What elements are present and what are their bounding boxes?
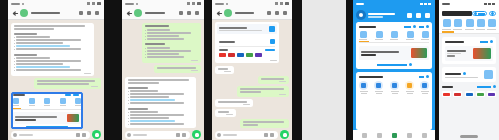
button[interactable] [142, 23, 201, 63]
button[interactable]: Send voice message [92, 130, 101, 139]
button[interactable]: Contact avatar [224, 9, 232, 17]
button[interactable] [442, 67, 496, 82]
button[interactable]: Voice call [85, 9, 93, 17]
button[interactable]: Product tab [356, 22, 432, 69]
button[interactable]: Favourite transaction [374, 81, 383, 94]
button[interactable]: Voice call [185, 9, 193, 17]
button[interactable]: Favourite transaction [359, 81, 368, 94]
button[interactable]: Product tab [406, 31, 414, 40]
button[interactable]: Messages [405, 11, 414, 20]
button[interactable]: Nav item [375, 131, 383, 139]
button[interactable]: Profile [356, 10, 366, 20]
button[interactable]: Favourite transaction [356, 72, 432, 130]
button[interactable] [34, 78, 101, 89]
button[interactable] [215, 66, 234, 74]
button[interactable] [215, 99, 253, 107]
button[interactable]: e-Wallet provider [487, 91, 496, 97]
button[interactable] [489, 11, 496, 16]
button[interactable]: Product category [442, 19, 451, 30]
button[interactable] [154, 65, 201, 73]
button[interactable]: Product tab [359, 31, 367, 40]
button[interactable]: More options [93, 9, 101, 17]
button[interactable]: Back [125, 9, 133, 17]
button[interactable]: Product tab [390, 31, 398, 40]
button[interactable]: Logout [423, 11, 432, 20]
button[interactable]: Voice call [273, 9, 281, 17]
button[interactable]: Product category [465, 19, 474, 30]
button[interactable]: Send voice message [192, 130, 201, 139]
button[interactable]: Nav item [420, 131, 428, 139]
button[interactable]: Product category [453, 19, 462, 30]
button[interactable] [11, 23, 94, 76]
button[interactable]: More options [281, 9, 289, 17]
button[interactable]: e-Wallet provider [453, 91, 462, 97]
button[interactable]: e-Wallet provider [476, 91, 485, 97]
button[interactable] [11, 92, 83, 129]
button[interactable]: Settings [414, 11, 423, 20]
button[interactable] [215, 22, 279, 63]
button[interactable]: Back [11, 9, 19, 17]
button[interactable]: Product category [487, 19, 496, 30]
button[interactable]: Nav item [360, 131, 368, 139]
button[interactable] [125, 131, 190, 139]
button[interactable]: Product tab [421, 31, 429, 40]
button[interactable]: Product tab [375, 31, 383, 40]
button[interactable]: More options [193, 9, 201, 17]
button[interactable] [215, 131, 278, 139]
button[interactable] [359, 46, 429, 60]
button[interactable] [445, 46, 493, 61]
button[interactable]: Contact avatar [20, 9, 28, 17]
button[interactable]: Favourite transaction [390, 81, 399, 94]
button[interactable]: Nav item [390, 131, 398, 139]
button[interactable]: e-Wallet provider [442, 91, 451, 97]
button[interactable]: Favourite transaction [420, 81, 429, 94]
button[interactable]: Send voice message [280, 130, 289, 139]
button[interactable]: Product category [476, 19, 485, 30]
button[interactable] [240, 119, 289, 128]
button[interactable] [125, 77, 196, 128]
button[interactable]: Video call [265, 9, 273, 17]
button[interactable] [472, 11, 487, 16]
button[interactable] [258, 76, 289, 84]
button[interactable]: Video call [177, 9, 185, 17]
button[interactable] [215, 109, 236, 117]
button[interactable]: Video call [77, 9, 85, 17]
button[interactable] [442, 37, 496, 64]
button[interactable]: Back [215, 9, 223, 17]
button[interactable]: Favourite transaction [405, 81, 414, 94]
button[interactable] [377, 63, 412, 66]
button[interactable]: Contact avatar [134, 9, 142, 17]
button[interactable] [11, 131, 90, 139]
button[interactable]: Nav item [405, 131, 413, 139]
button[interactable]: e-Wallet provider [465, 91, 474, 97]
button[interactable] [237, 86, 289, 97]
